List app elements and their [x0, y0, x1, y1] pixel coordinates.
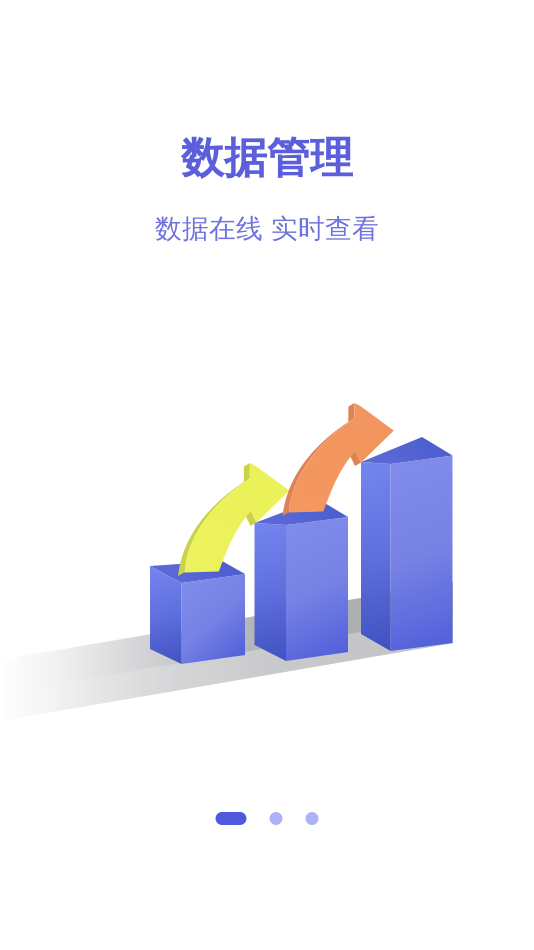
- staticText: 数据在线 实时查看: [155, 212, 379, 245]
- staticText: 数据管理: [181, 132, 353, 184]
